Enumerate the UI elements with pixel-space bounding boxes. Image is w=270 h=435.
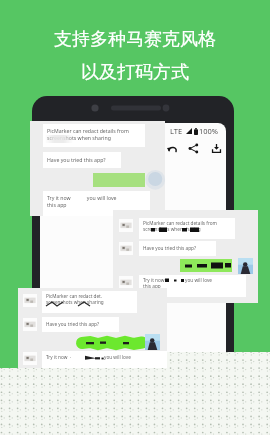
staticText: Try it now you will love	[47, 194, 117, 201]
staticText: Have you tried this app?	[46, 321, 99, 327]
staticText: 支持多种马赛克风格	[54, 28, 216, 51]
staticText: PicMarker can redact det.	[46, 293, 103, 299]
staticText: screenshots when sharing	[143, 226, 201, 232]
staticText: 以及打码方式	[81, 61, 189, 84]
button[interactable]: Share	[184, 139, 202, 157]
staticText: this app	[143, 283, 161, 289]
button[interactable]: Save	[207, 139, 225, 157]
staticText: Have you tried this app?	[143, 245, 196, 251]
staticText: you will love	[104, 354, 131, 360]
staticText: Try it now you will love	[143, 277, 212, 283]
staticText: LTE	[170, 126, 183, 136]
staticText: Try it now ·	[46, 354, 72, 360]
button[interactable]: Undo	[163, 139, 181, 157]
staticText: PicMarker can redact details from	[143, 220, 217, 226]
staticText: this app	[47, 201, 67, 208]
staticText: Have you tried this app?	[47, 156, 106, 163]
staticText: screenshots when sharing	[47, 134, 111, 141]
staticText: screenshots when sharing	[46, 299, 104, 305]
staticText: PicMarker can redact details from	[47, 127, 129, 134]
staticText: 100%	[199, 126, 219, 136]
